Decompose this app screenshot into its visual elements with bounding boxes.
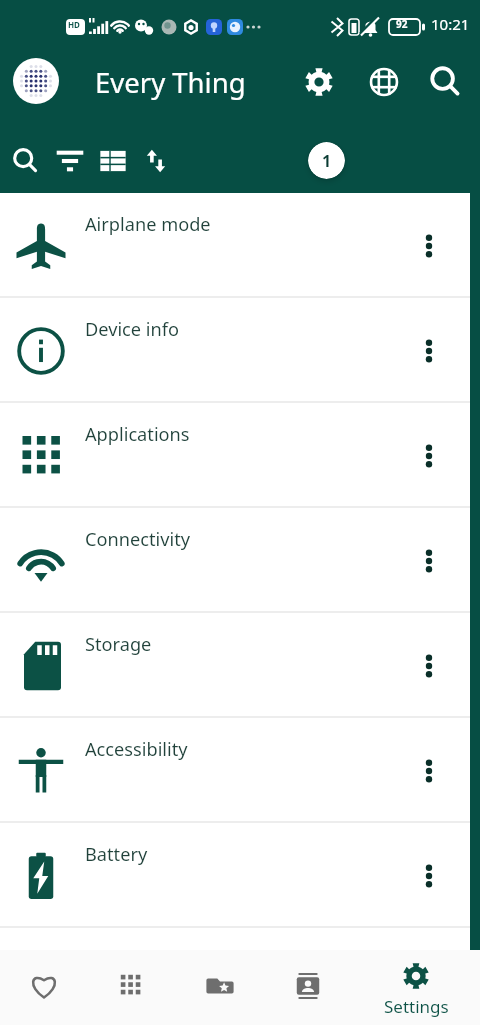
button[interactable]: More options bbox=[409, 646, 449, 686]
button[interactable]: Settings bbox=[295, 58, 343, 106]
staticText: Device info bbox=[85, 317, 180, 342]
staticText: Connectivity bbox=[85, 527, 190, 552]
button[interactable]: More options bbox=[409, 331, 449, 371]
button[interactable]: Storage bbox=[0, 613, 470, 718]
button[interactable]: Applications bbox=[0, 403, 470, 508]
staticText: Every Thing bbox=[95, 64, 246, 101]
button[interactable]: Accessibility bbox=[0, 718, 470, 823]
button[interactable]: Language bbox=[360, 58, 408, 106]
button[interactable]: More options bbox=[409, 436, 449, 476]
button[interactable]: Filter bbox=[48, 139, 92, 183]
button[interactable]: Airplane mode bbox=[0, 193, 470, 298]
button[interactable]: More options bbox=[409, 751, 449, 791]
button[interactable]: Contacts bbox=[264, 950, 352, 1025]
staticText: 1 bbox=[322, 150, 332, 172]
staticText: Airplane mode bbox=[85, 212, 211, 237]
button[interactable]: Change view bbox=[91, 139, 135, 183]
button[interactable]: Folders bbox=[176, 950, 264, 1025]
button[interactable]: Search bbox=[4, 139, 48, 183]
button[interactable]: Device info bbox=[0, 298, 470, 403]
staticText: 10:21 bbox=[431, 14, 470, 34]
button[interactable]: More options bbox=[409, 856, 449, 896]
button[interactable]: Search bbox=[422, 58, 470, 106]
staticText: Battery bbox=[85, 842, 148, 867]
button[interactable]: Apps bbox=[88, 950, 176, 1025]
staticText: HD bbox=[68, 19, 80, 30]
button[interactable]: Favourites bbox=[0, 950, 88, 1025]
staticText: Settings bbox=[384, 995, 449, 1018]
button[interactable]: Settings bbox=[356, 950, 476, 1025]
staticText: Storage bbox=[85, 632, 152, 657]
button[interactable]: Battery bbox=[0, 823, 470, 928]
staticText: 92 bbox=[396, 17, 408, 31]
staticText: Accessibility bbox=[85, 737, 188, 762]
button[interactable]: More options bbox=[409, 541, 449, 581]
button[interactable]: More options bbox=[409, 226, 449, 266]
button[interactable]: Sort bbox=[134, 139, 178, 183]
button[interactable]: Connectivity bbox=[0, 508, 470, 613]
button[interactable]: App logo bbox=[13, 58, 59, 104]
button[interactable]: 1 bbox=[308, 142, 345, 179]
staticText: Applications bbox=[85, 422, 190, 447]
